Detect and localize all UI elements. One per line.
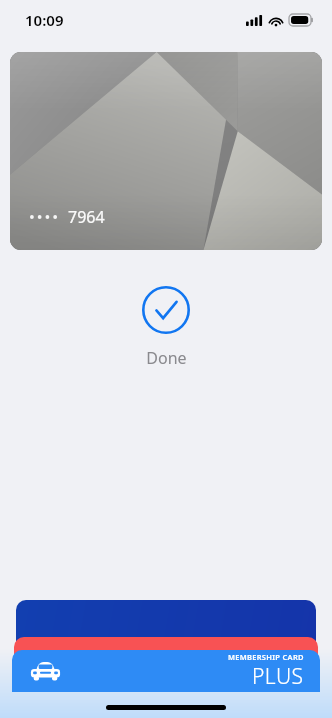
button[interactable]: 7964 <box>10 52 322 250</box>
button[interactable]: Done <box>142 286 190 334</box>
button[interactable] <box>14 637 318 661</box>
staticText: 10:09 <box>25 10 64 30</box>
staticText: MEMBERSHIP CARD <box>228 652 304 662</box>
staticText: Done <box>146 347 187 369</box>
staticText: 7964 <box>68 206 105 228</box>
button[interactable] <box>16 600 316 652</box>
button[interactable]: MEMBERSHIP CARD <box>12 650 320 692</box>
staticText: PLUS <box>252 662 304 691</box>
